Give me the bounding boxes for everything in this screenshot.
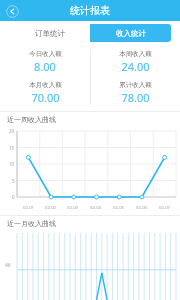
staticText: 0	[12, 194, 15, 200]
staticText: 收入统计	[116, 29, 146, 38]
staticText: 78.00	[121, 90, 150, 105]
staticText: 15	[9, 145, 15, 151]
staticText: 5	[12, 178, 15, 184]
staticText: 8.00	[34, 59, 56, 74]
staticText: 02-06	[136, 205, 147, 211]
staticText: 统计报表	[70, 4, 110, 17]
staticText: 近一周收入曲线	[7, 115, 56, 124]
button[interactable]: 本月收入额	[0, 77, 90, 108]
staticText: 20	[9, 128, 15, 134]
staticText: 70.00	[31, 90, 60, 105]
staticText: 02-07	[159, 205, 170, 211]
staticText: 02-04	[90, 205, 101, 211]
staticText: 02-05	[113, 205, 124, 211]
staticText: 本周收入额	[119, 50, 152, 58]
button[interactable]: 订单统计	[9, 24, 90, 42]
button[interactable]: 今日收入额	[0, 46, 90, 77]
staticText: 24.00	[121, 59, 150, 74]
staticText: 近一月收入曲线	[7, 219, 56, 228]
staticText: 46	[5, 262, 11, 269]
staticText: 今日收入额	[29, 50, 62, 58]
staticText: 累计收入额	[119, 81, 152, 89]
button[interactable]: 本周收入额	[90, 46, 180, 77]
button[interactable]: 收入统计	[90, 24, 171, 42]
staticText: 10	[9, 161, 15, 167]
staticText: 02-01	[23, 205, 34, 211]
staticText: 02-02	[45, 205, 56, 211]
button[interactable]: Back	[4, 3, 20, 19]
staticText: 本月收入额	[29, 81, 62, 89]
button[interactable]: 累计收入额	[90, 77, 180, 108]
staticText: 订单统计	[35, 29, 65, 38]
staticText: 02-03	[67, 205, 78, 211]
